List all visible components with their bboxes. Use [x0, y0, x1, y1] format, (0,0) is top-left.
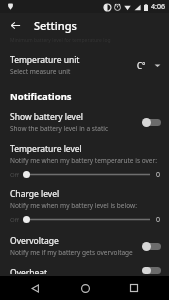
- button[interactable]: Overvoltage: [0, 233, 169, 259]
- staticText: Settings: [34, 18, 77, 33]
- button[interactable]: Show battery level: [0, 109, 169, 135]
- staticText: Overheat: [10, 267, 48, 274]
- other: Toggle: [141, 240, 161, 252]
- staticText: C°: [137, 60, 146, 71]
- staticText: Notifications: [10, 90, 72, 103]
- staticText: Off: [10, 171, 19, 179]
- staticText: Charge level: [10, 188, 60, 200]
- button[interactable]: Slider: [10, 214, 161, 225]
- button[interactable]: Overheat: [0, 265, 169, 276]
- staticText: Overvoltage: [10, 235, 59, 247]
- staticText: Show battery level: [10, 111, 83, 123]
- staticText: Notify me if my battery gets overvoltage: [10, 248, 133, 257]
- staticText: Temperature level: [10, 143, 82, 155]
- button[interactable]: Back: [5, 15, 25, 35]
- staticText: Show the battery level in a static notif…: [10, 124, 137, 133]
- button[interactable]: Slider: [10, 169, 161, 180]
- other: Toggle: [141, 267, 161, 274]
- staticText: Minimum battery level for temperature lo…: [10, 37, 111, 44]
- staticText: 0: [156, 215, 161, 225]
- staticText: 0: [156, 170, 161, 180]
- staticText: Temperature unit: [10, 54, 80, 66]
- button[interactable]: Temperature unit: [0, 52, 169, 78]
- staticText: Notify me when my battery temperarute is…: [10, 156, 157, 165]
- button[interactable]: Recent apps: [120, 276, 148, 300]
- staticText: Off: [10, 216, 19, 224]
- staticText: Select measure unit: [10, 67, 71, 76]
- other: Toggle: [141, 116, 161, 128]
- staticText: 4:06: [151, 2, 165, 12]
- button[interactable]: Back: [21, 276, 49, 300]
- button[interactable]: Home: [71, 276, 99, 300]
- staticText: Notify me when my battery level is below…: [10, 201, 137, 210]
